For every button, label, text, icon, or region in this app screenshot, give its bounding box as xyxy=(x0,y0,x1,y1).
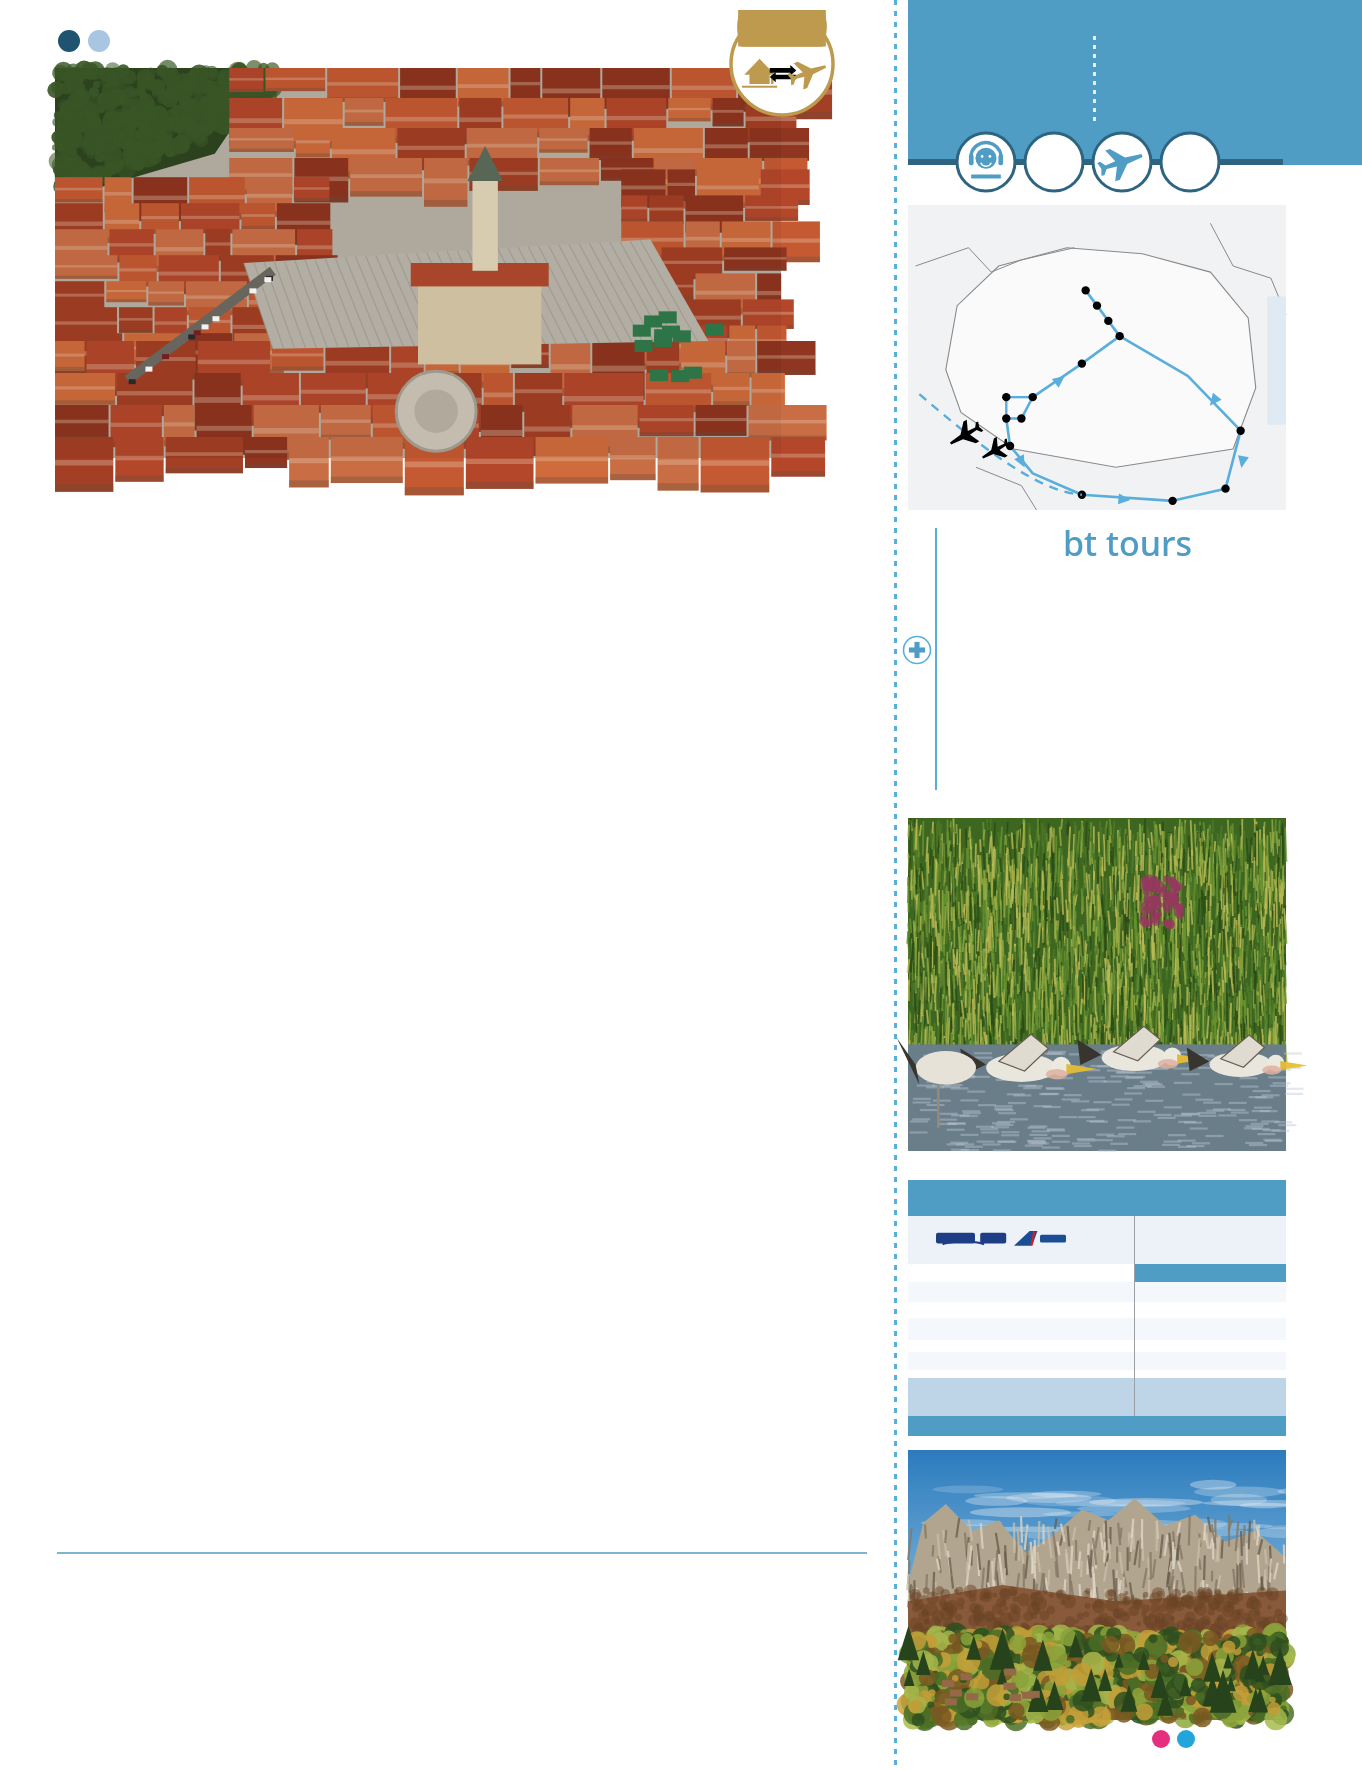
button[interactable]: Guided tour xyxy=(1023,131,1085,193)
button[interactable] xyxy=(908,818,1286,1151)
button[interactable]: Add extension xyxy=(902,635,932,665)
button[interactable]: Flight included xyxy=(1091,131,1153,193)
button[interactable]: Hotel and flight included xyxy=(728,10,836,118)
button[interactable]: bt tours xyxy=(1063,520,1192,566)
button[interactable] xyxy=(58,30,110,52)
button[interactable]: Hotel included xyxy=(1159,131,1221,193)
button[interactable]: Audio guide xyxy=(955,131,1017,193)
button[interactable] xyxy=(908,1450,1286,1720)
staticText: bt tours xyxy=(1063,520,1192,566)
button[interactable]: Blue Air and TAROM xyxy=(936,1228,1066,1254)
button[interactable] xyxy=(1152,1730,1195,1748)
button[interactable] xyxy=(908,205,1286,510)
button[interactable] xyxy=(55,68,781,458)
